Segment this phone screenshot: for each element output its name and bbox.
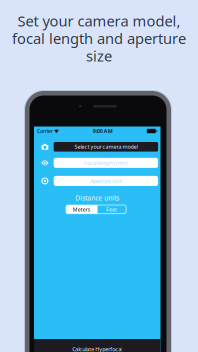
staticText: Select your camera model <box>74 143 137 150</box>
staticText: size <box>86 46 112 65</box>
staticText: Carrier <box>37 127 53 135</box>
staticText: 9:00 AM <box>93 127 113 135</box>
staticText: Calculate Hyperfocal <box>72 346 122 352</box>
button[interactable]: Focal length (mm) <box>54 158 158 168</box>
button[interactable]: Calculate Hyperfocal <box>34 339 160 352</box>
staticText: Meters <box>73 206 91 213</box>
staticText: Focal length (mm) <box>84 159 128 166</box>
button[interactable]: Select your camera model <box>54 142 158 152</box>
button[interactable]: Meters <box>66 205 97 214</box>
staticText: Distance units <box>75 194 119 202</box>
staticText: Set your camera model, <box>17 11 180 30</box>
staticText: Feet <box>106 206 117 213</box>
button[interactable]: Aperture size <box>54 176 158 186</box>
staticText: focal length and aperture <box>12 28 186 48</box>
button[interactable]: Feet <box>97 205 126 214</box>
staticText: Aperture size <box>90 177 122 184</box>
